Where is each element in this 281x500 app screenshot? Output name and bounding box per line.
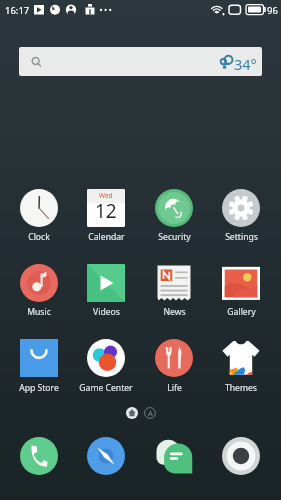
staticText: News — [163, 306, 186, 318]
button[interactable]: Phone — [20, 437, 58, 475]
button[interactable]: Search — [19, 47, 262, 76]
staticText: 12 — [95, 198, 117, 224]
staticText: Game Center — [79, 382, 133, 394]
staticText: Wed — [99, 191, 113, 200]
staticText: Music — [27, 306, 51, 318]
staticText: Clock — [28, 231, 50, 243]
button[interactable]: Themes — [222, 339, 260, 377]
staticText: 16:17 — [5, 4, 30, 17]
button[interactable]: Game Center — [87, 339, 125, 377]
button[interactable]: Messages — [155, 437, 193, 475]
button[interactable]: Settings — [222, 189, 260, 227]
staticText: 34° — [234, 54, 257, 74]
staticText: 96 — [267, 4, 278, 17]
staticText: App Store — [19, 382, 59, 394]
button[interactable]: Clock — [20, 189, 58, 227]
button[interactable]: Music — [20, 264, 58, 302]
button[interactable]: Camera — [222, 437, 260, 475]
button[interactable]: Gallery — [222, 264, 260, 302]
button[interactable]: Home page — [126, 407, 138, 419]
staticText: Videos — [93, 306, 120, 318]
button[interactable]: Browser — [87, 437, 125, 475]
button[interactable]: Security — [155, 189, 193, 227]
staticText: Themes — [225, 382, 257, 394]
button[interactable]: Videos — [87, 264, 125, 302]
button[interactable]: App Store — [20, 339, 58, 377]
staticText: Life — [167, 382, 182, 394]
staticText: A — [148, 408, 153, 418]
staticText: Gallery — [227, 306, 256, 318]
button[interactable]: Life — [155, 339, 193, 377]
button[interactable]: News — [155, 264, 193, 302]
button[interactable]: Calendar — [87, 189, 125, 227]
button[interactable]: All apps page — [144, 407, 156, 419]
staticText: Settings — [225, 231, 258, 243]
staticText: Calendar — [88, 231, 125, 243]
staticText: Security — [158, 231, 191, 243]
